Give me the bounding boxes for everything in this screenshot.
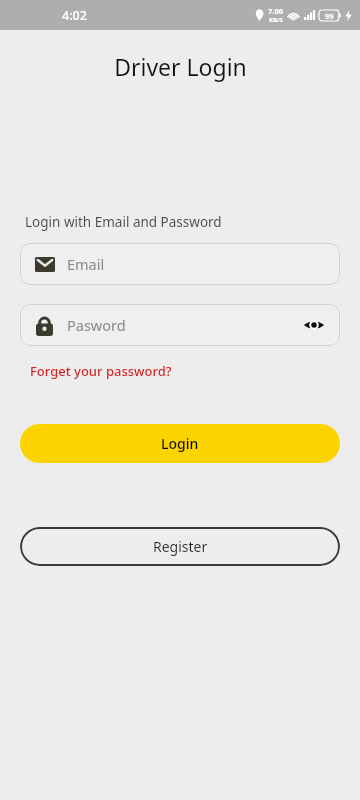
- button[interactable]: Pasword: [20, 304, 340, 346]
- button[interactable]: Email: [20, 243, 340, 285]
- staticText: Pasword: [67, 315, 126, 335]
- staticText: Email: [67, 254, 105, 274]
- button[interactable]: Forget your password?: [30, 362, 172, 380]
- staticText: Forget your password?: [30, 362, 172, 380]
- staticText: Driver Login: [114, 51, 247, 82]
- staticText: KB/S: [269, 16, 283, 24]
- staticText: Login: [161, 434, 199, 453]
- button[interactable]: Show password: [302, 313, 326, 337]
- button[interactable]: Login: [20, 424, 340, 463]
- staticText: Login with Email and Password: [25, 213, 222, 231]
- button[interactable]: Register: [20, 527, 340, 566]
- staticText: 4:02: [62, 7, 87, 24]
- staticText: 7.00: [268, 6, 283, 16]
- staticText: Register: [153, 537, 208, 556]
- staticText: 99: [325, 11, 334, 21]
